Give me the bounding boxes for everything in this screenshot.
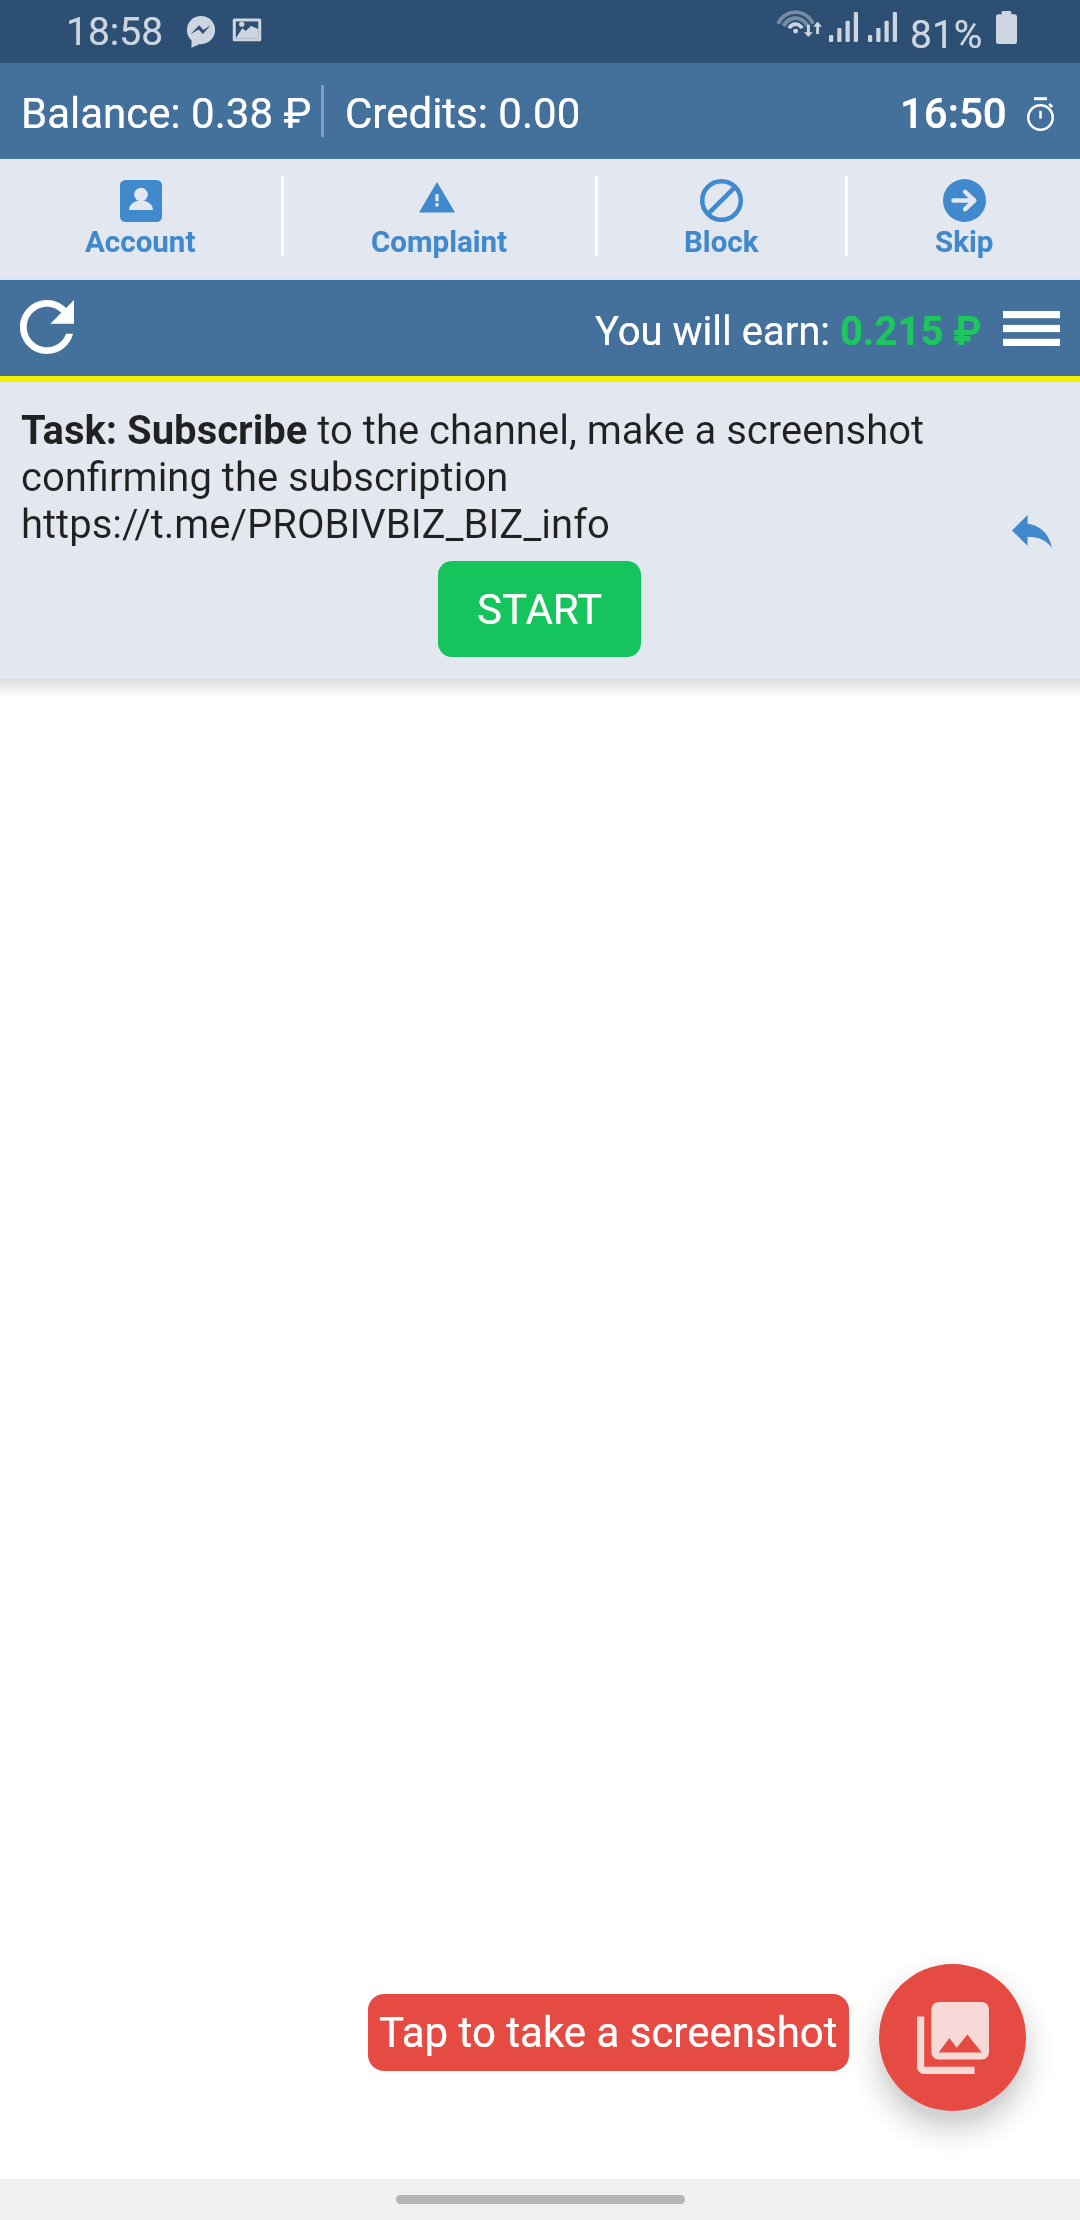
button[interactable]: Open gallery bbox=[879, 1964, 1026, 2111]
button[interactable]: Reply bbox=[992, 491, 1072, 571]
staticText: Balance: 0.38 ₽ bbox=[21, 89, 312, 138]
staticText: Task: Subscribe to the channel, make a s… bbox=[21, 407, 925, 548]
staticText: Skip bbox=[935, 225, 994, 260]
button[interactable]: Refresh bbox=[7, 288, 87, 368]
staticText: START bbox=[477, 585, 603, 634]
staticText: 81% bbox=[910, 12, 983, 58]
staticText: You will earn: 0.215 ₽ bbox=[595, 308, 982, 355]
button[interactable]: START bbox=[438, 561, 641, 657]
button[interactable]: Complaint bbox=[284, 159, 595, 280]
staticText: Complaint bbox=[371, 225, 508, 260]
staticText: Block bbox=[684, 225, 759, 260]
button[interactable]: Block bbox=[598, 159, 845, 280]
staticText: Tap to take a screenshot bbox=[379, 2008, 838, 2057]
button[interactable]: Tap to take a screenshot bbox=[368, 1994, 849, 2071]
staticText: Account bbox=[85, 225, 196, 260]
staticText: 18:58 bbox=[66, 9, 164, 55]
button[interactable]: Skip bbox=[848, 159, 1080, 280]
button[interactable]: Menu bbox=[1003, 293, 1060, 363]
staticText: 16:50 bbox=[900, 89, 1007, 138]
button[interactable]: Account bbox=[0, 159, 281, 280]
staticText: Credits: 0.00 bbox=[345, 89, 581, 138]
